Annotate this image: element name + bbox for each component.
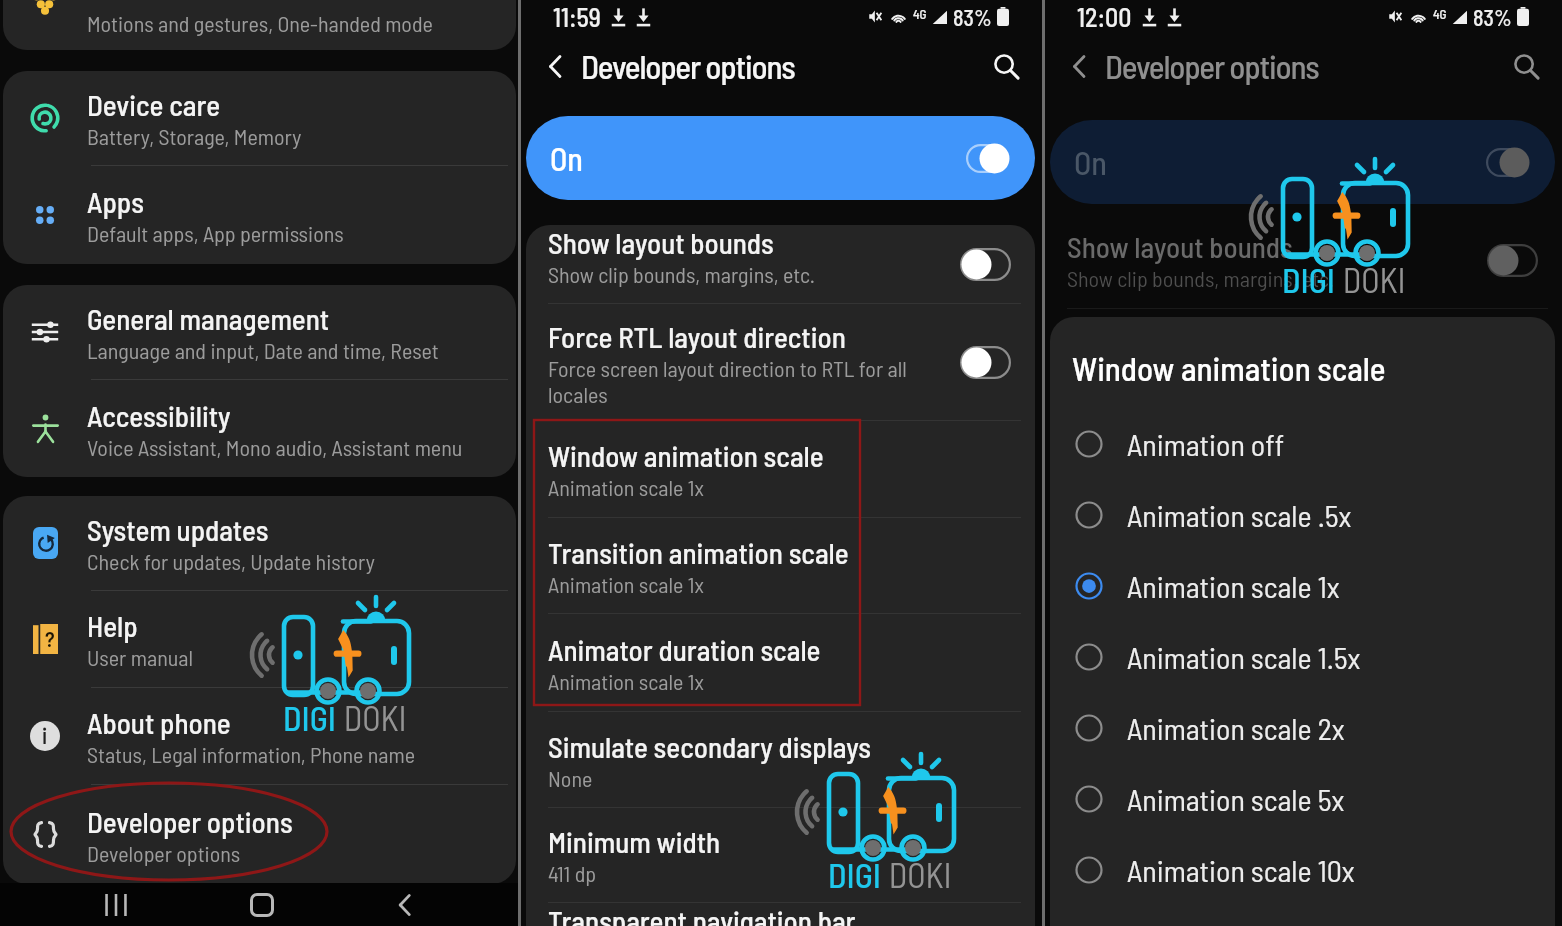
button[interactable]: Force RTL layout direction xyxy=(526,304,1035,420)
button[interactable]: Developer options xyxy=(3,785,516,884)
staticText: 11:59 xyxy=(553,1,601,32)
button[interactable]: Minimum width xyxy=(526,808,1035,902)
staticText: Accessibility xyxy=(87,398,231,433)
staticText: Animation scale 10x xyxy=(1127,852,1355,888)
button[interactable]: Search xyxy=(1504,44,1548,88)
staticText: Force RTL layout direction xyxy=(548,319,846,354)
staticText: Window animation scale xyxy=(1072,348,1386,388)
staticText: 83% xyxy=(953,4,992,30)
staticText: 12:00 xyxy=(1077,1,1132,32)
button[interactable]: On xyxy=(1050,120,1555,204)
button[interactable]: Animation scale 1.5x xyxy=(1050,621,1555,692)
staticText: Motions and gestures, One-handed mode xyxy=(87,10,433,36)
staticText: Show layout bounds xyxy=(548,225,774,260)
staticText: Status, Legal information, Phone name xyxy=(87,741,415,767)
staticText: Animation scale 1.5x xyxy=(1127,639,1361,675)
staticText: Default apps, App permissions xyxy=(87,220,344,246)
button[interactable]: Animator duration scale xyxy=(526,614,1035,711)
staticText: DIGI xyxy=(828,854,882,895)
button[interactable]: Navigate up xyxy=(533,44,577,88)
button[interactable]: Developer options switch xyxy=(1486,148,1527,177)
staticText: Help xyxy=(87,608,138,643)
staticText: Animation scale 1x xyxy=(548,474,704,500)
staticText: None xyxy=(548,765,593,791)
staticText: DIGI xyxy=(283,697,337,738)
staticText: Animation scale 1x xyxy=(1127,568,1340,604)
button[interactable]: Motions and gestures, One-handed mode xyxy=(3,0,516,50)
button[interactable]: Window animation scale xyxy=(526,421,1035,517)
staticText: Animator duration scale xyxy=(548,632,821,667)
button[interactable]: Apps xyxy=(3,166,516,264)
button[interactable]: Animation off xyxy=(1050,408,1555,479)
staticText: ? xyxy=(45,626,55,651)
button[interactable]: System updates xyxy=(3,496,516,590)
button[interactable]: Device care xyxy=(3,71,516,165)
staticText: Force screen layout direction to RTL for… xyxy=(548,355,950,407)
button[interactable]: Recent apps xyxy=(93,883,139,926)
staticText: Language and input, Date and time, Reset xyxy=(87,337,439,363)
button[interactable]: Animation scale 1x xyxy=(1050,550,1555,621)
button[interactable]: General management xyxy=(3,285,516,379)
button[interactable]: On xyxy=(526,116,1035,200)
button[interactable]: Search xyxy=(984,44,1028,88)
button[interactable]: Transition animation scale xyxy=(526,518,1035,613)
staticText: Window animation scale xyxy=(548,438,824,473)
button[interactable]: Simulate secondary displays xyxy=(526,712,1035,807)
button[interactable]: Animation scale 10x xyxy=(1050,834,1555,905)
button[interactable]: Developer options switch xyxy=(966,144,1007,173)
staticText: System updates xyxy=(87,512,269,547)
staticText: 83% xyxy=(1473,4,1512,30)
button[interactable]: Accessibility xyxy=(3,380,516,477)
button[interactable]: Show layout bounds xyxy=(526,225,1035,303)
button[interactable]: Show layout bounds switch xyxy=(1487,244,1538,277)
button[interactable]: Transparent navigation bar xyxy=(526,903,1035,926)
staticText: DOKI xyxy=(1336,259,1406,300)
staticText: Animation scale 1x xyxy=(548,668,704,694)
button[interactable]: Animation scale .5x xyxy=(1050,479,1555,550)
button[interactable]: Force RTL layout direction switch xyxy=(960,346,1011,379)
button[interactable]: Animation scale 5x xyxy=(1050,763,1555,834)
staticText: Show clip bounds, margins, etc. xyxy=(1067,265,1334,291)
staticText: Developer options xyxy=(1105,46,1319,86)
staticText: Animation off xyxy=(1127,426,1285,462)
staticText: Simulate secondary displays xyxy=(548,729,871,764)
staticText: Voice Assistant, Mono audio, Assistant m… xyxy=(87,434,463,460)
staticText: DOKI xyxy=(337,697,407,738)
staticText: Battery, Storage, Memory xyxy=(87,123,302,149)
staticText: Show clip bounds, margins, etc. xyxy=(548,261,815,287)
staticText: i xyxy=(42,722,48,748)
staticText: Minimum width xyxy=(548,824,721,859)
button[interactable]: Back xyxy=(382,883,428,926)
staticText: General management xyxy=(87,301,330,336)
button[interactable]: Navigate up xyxy=(1057,44,1101,88)
staticText: User manual xyxy=(87,644,193,670)
staticText: Developer options xyxy=(581,46,795,86)
staticText: Animation scale 5x xyxy=(1127,781,1345,817)
staticText: Animation scale .5x xyxy=(1127,497,1352,533)
staticText: Apps xyxy=(87,184,144,219)
staticText: Animation scale 1x xyxy=(548,571,704,597)
staticText: About phone xyxy=(87,705,231,740)
staticText: 411 dp xyxy=(548,860,597,886)
staticText: DIGI xyxy=(1282,259,1336,300)
staticText: 4G xyxy=(913,6,927,22)
button[interactable]: Animation scale 2x xyxy=(1050,692,1555,763)
staticText: On xyxy=(550,139,583,177)
button[interactable]: ? xyxy=(3,591,516,687)
button[interactable]: Show layout bounds switch xyxy=(960,248,1011,281)
staticText: Check for updates, Update history xyxy=(87,548,375,574)
staticText: Developer options xyxy=(87,840,241,866)
staticText: Animation scale 2x xyxy=(1127,710,1345,746)
staticText: Transition animation scale xyxy=(548,535,849,570)
staticText: Show layout bounds xyxy=(1067,229,1293,264)
staticText: On xyxy=(1074,143,1107,181)
staticText: DOKI xyxy=(882,854,952,895)
staticText: Device care xyxy=(87,87,220,122)
staticText: 4G xyxy=(1433,6,1447,22)
staticText: Developer options xyxy=(87,804,293,839)
staticText: Transparent navigation bar xyxy=(548,903,856,926)
button[interactable]: Home xyxy=(239,883,285,926)
button[interactable]: Show layout bounds xyxy=(1045,225,1562,295)
button[interactable]: i xyxy=(3,688,516,784)
